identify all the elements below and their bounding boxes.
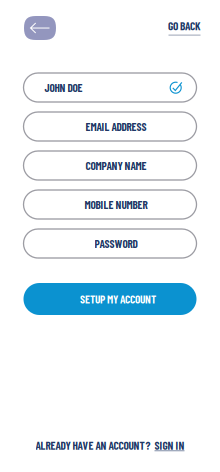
staticText: SIGN IN	[154, 438, 184, 452]
button[interactable]: JOHN DOE	[23, 73, 196, 102]
button[interactable]: Back	[24, 16, 56, 40]
button[interactable]: COMPANY NAME	[23, 151, 196, 180]
button[interactable]: EMAIL ADDRESS	[23, 112, 196, 141]
staticText: COMPANY NAME	[85, 159, 146, 172]
button[interactable]: SETUP MY ACCOUNT	[23, 283, 196, 315]
staticText: GO BACK	[168, 19, 201, 33]
staticText: PASSWORD	[94, 237, 137, 250]
button[interactable]: ALREADY HAVE AN ACCOUNT?	[35, 438, 184, 452]
staticText: JOHN DOE	[44, 81, 82, 94]
staticText: EMAIL ADDRESS	[85, 120, 146, 133]
staticText: ALREADY HAVE AN ACCOUNT?	[35, 438, 150, 452]
button[interactable]: MOBILE NUMBER	[23, 190, 196, 219]
button[interactable]: PASSWORD	[23, 229, 196, 258]
staticText: SETUP MY ACCOUNT	[80, 292, 156, 306]
button[interactable]: GO BACK	[168, 16, 201, 40]
staticText: MOBILE NUMBER	[84, 198, 147, 211]
